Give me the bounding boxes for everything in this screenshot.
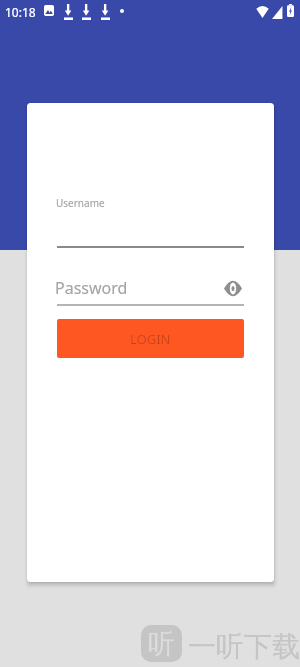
staticText: 10:18 — [5, 4, 36, 20]
button[interactable]: Password — [57, 273, 244, 306]
staticText: LOGIN — [130, 330, 171, 348]
staticText: Username — [56, 196, 105, 210]
button[interactable]: LOGIN — [57, 319, 244, 358]
staticText: 听 — [148, 627, 175, 661]
button[interactable]: Username — [57, 189, 244, 248]
staticText: Password — [55, 277, 128, 299]
staticText: 一听下载 — [188, 629, 300, 664]
button[interactable]: Show password — [223, 278, 243, 298]
